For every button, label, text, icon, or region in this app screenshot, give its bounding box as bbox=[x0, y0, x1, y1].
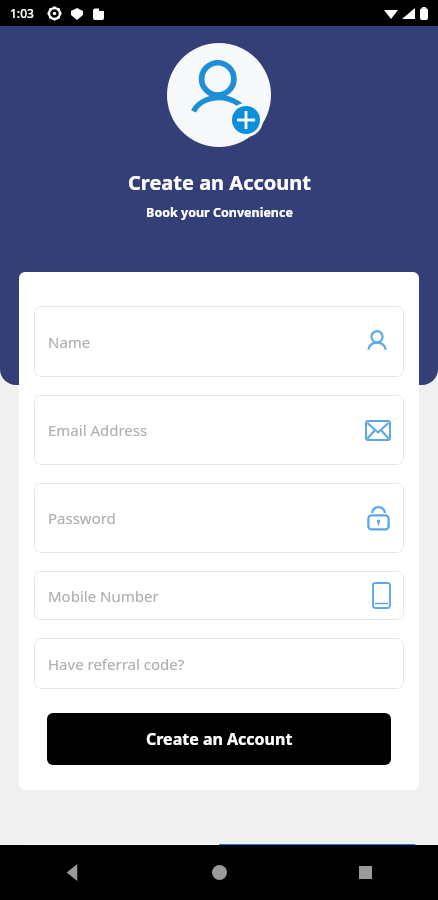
button[interactable]: Mobile Number bbox=[34, 571, 404, 620]
button[interactable]: Password bbox=[34, 483, 404, 553]
staticText: Book your Convenience bbox=[146, 204, 293, 221]
staticText: Email Address bbox=[48, 420, 148, 440]
other: Password bbox=[367, 505, 390, 531]
button[interactable]: Home bbox=[146, 845, 292, 900]
staticText: Name bbox=[48, 332, 91, 352]
button[interactable]: Name bbox=[34, 306, 404, 377]
staticText: Create an Account bbox=[128, 169, 311, 196]
staticText: Create an Account bbox=[146, 728, 293, 750]
button[interactable]: Have referral code? bbox=[34, 638, 404, 689]
staticText: 1:03 bbox=[10, 5, 34, 21]
staticText: Have referral code? bbox=[48, 654, 185, 674]
button[interactable] bbox=[219, 844, 417, 872]
button[interactable]: Email Address bbox=[34, 395, 404, 465]
staticText: Password bbox=[48, 508, 116, 528]
button[interactable]: Back bbox=[0, 845, 146, 900]
staticText: Mobile Number bbox=[48, 586, 159, 606]
button[interactable]: Create an Account bbox=[47, 713, 391, 765]
other: Email bbox=[366, 421, 390, 440]
button[interactable]: Recent apps bbox=[292, 845, 438, 900]
other: Name bbox=[364, 329, 390, 355]
button[interactable] bbox=[21, 844, 219, 872]
other: Mobile number bbox=[373, 583, 390, 608]
